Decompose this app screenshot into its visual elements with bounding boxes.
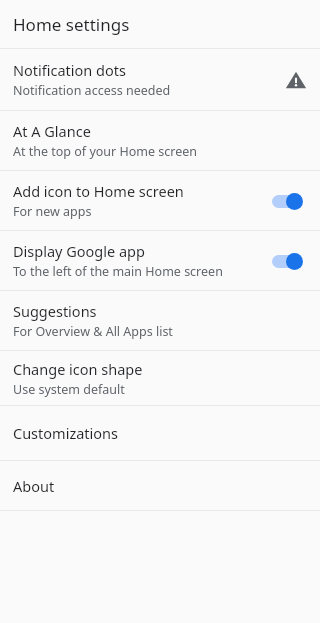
staticText: Add icon to Home screen: [13, 181, 184, 201]
staticText: Change icon shape: [13, 359, 143, 379]
staticText: Suggestions: [13, 301, 97, 321]
staticText: At the top of your Home screen: [13, 143, 198, 160]
staticText: Customizations: [13, 423, 118, 443]
staticText: At A Glance: [13, 121, 91, 141]
button[interactable]: Add icon to Home screen: [0, 171, 320, 230]
button[interactable]: Toggle on: [271, 190, 307, 212]
staticText: Display Google app: [13, 241, 145, 261]
button[interactable]: Customizations: [0, 406, 320, 460]
staticText: Notification access needed: [13, 82, 171, 99]
other: Warning: notification access needed: [285, 69, 307, 91]
staticText: About: [13, 476, 55, 496]
button[interactable]: Suggestions: [0, 291, 320, 350]
button[interactable]: Toggle on: [271, 250, 307, 272]
button[interactable]: About: [0, 461, 320, 510]
staticText: Use system default: [13, 381, 125, 398]
staticText: To the left of the main Home screen: [13, 263, 223, 280]
button[interactable]: Change icon shape: [0, 351, 320, 405]
button[interactable]: At A Glance: [0, 111, 320, 170]
button[interactable]: Notification dots: [0, 49, 320, 110]
staticText: For Overview & All Apps list: [13, 323, 173, 340]
button[interactable]: Display Google app: [0, 231, 320, 290]
staticText: Home settings: [13, 13, 130, 36]
staticText: Notification dots: [13, 60, 126, 80]
staticText: For new apps: [13, 203, 92, 220]
